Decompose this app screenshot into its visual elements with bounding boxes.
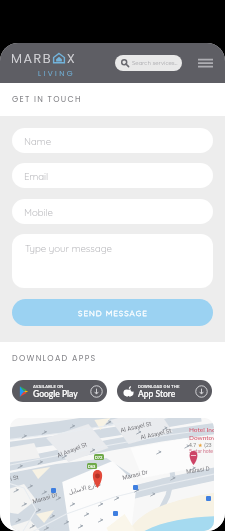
staticText: Marasi D [186,464,210,475]
staticText: 5-star hote [189,448,213,454]
staticText: App Store [138,389,176,399]
staticText: Search services... [132,59,178,67]
staticText: Marasi Dr [31,490,58,505]
staticText: Mobile [24,206,53,218]
staticText: Al Asayel St [120,419,152,433]
staticText: i St [10,473,20,482]
staticText: Name [24,135,52,147]
button[interactable]: Name [12,128,213,153]
staticText: 4.7 [189,442,198,448]
staticText: MARB [11,49,53,67]
staticText: Type your message [25,242,112,254]
staticText: Google Play [33,389,78,399]
button[interactable]: Type your message [12,234,213,288]
staticText: شارع الاسايل [68,480,101,495]
staticText: GET IN TOUCH [12,94,82,105]
staticText: D63 [88,464,96,469]
staticText: D72 [95,455,103,460]
button[interactable]: Search services... [115,55,182,71]
staticText: X [67,49,77,67]
button[interactable]: AVAILABLE ON [12,380,107,402]
staticText: DOWNLOAD APPS [12,353,97,364]
staticText: (23 [203,442,212,448]
staticText: Marasi Dr [121,468,148,481]
staticText: DOWNLOAD ON THE [138,384,180,389]
staticText: ★ [198,442,203,448]
staticText: Al Asayel St [56,440,88,459]
staticText: LIVING [38,68,75,78]
staticText: AVAILABLE ON [33,384,64,389]
button[interactable]: Email [12,163,213,188]
staticText: Hotel Ind [189,426,214,434]
staticText: Al Asayel St [140,426,172,440]
button[interactable]: Menu [194,52,216,74]
button[interactable]: Mobile [12,199,213,224]
button[interactable]: DOWNLOAD ON THE [117,380,212,402]
staticText: SEND MESSAGE [78,308,148,318]
staticText: Downtov [189,434,214,442]
staticText: Email [24,170,49,182]
button[interactable]: SEND MESSAGE [12,299,213,326]
